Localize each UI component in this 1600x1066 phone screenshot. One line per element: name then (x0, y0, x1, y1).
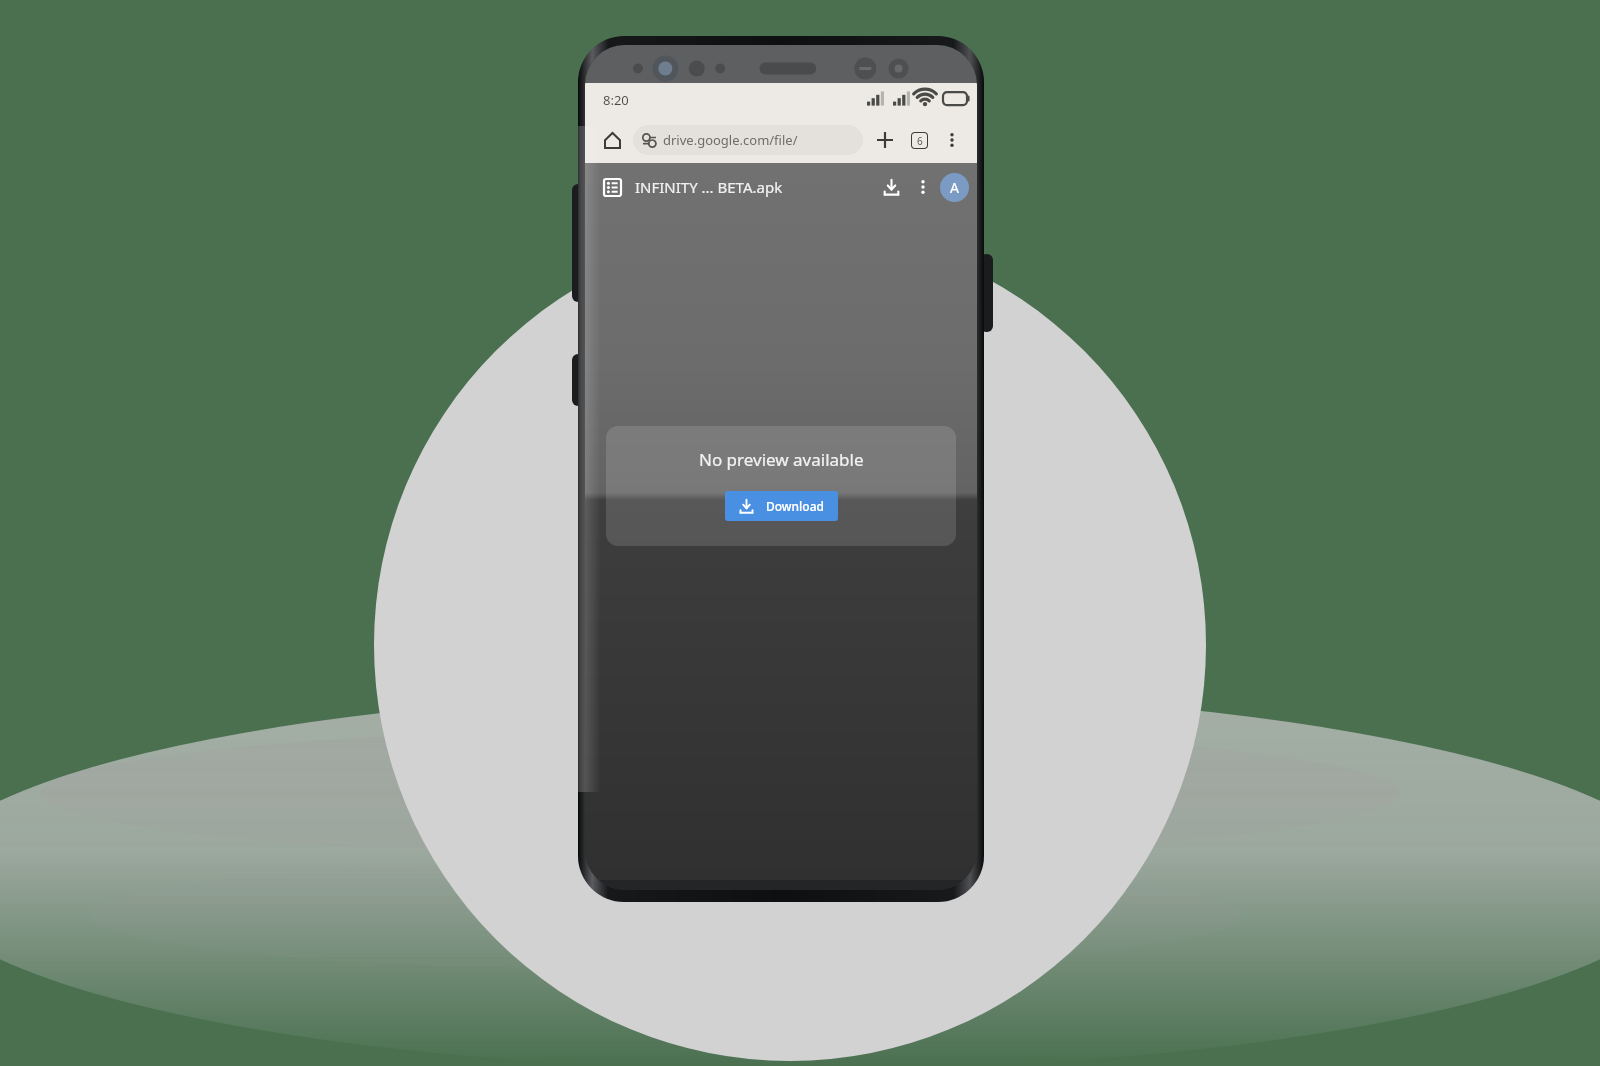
staticText: INFINITY ... BETA.apk (635, 177, 783, 197)
button[interactable]: More options (937, 125, 967, 155)
button[interactable]: drive.google.com/file/ (633, 125, 863, 155)
button[interactable]: File list (595, 170, 629, 204)
button[interactable]: Download (874, 170, 908, 204)
button[interactable]: New tab (869, 124, 901, 156)
staticText: A (950, 178, 959, 197)
staticText: 6 (917, 134, 923, 148)
button[interactable]: More options (908, 172, 938, 202)
button[interactable]: Download (725, 491, 838, 521)
staticText: drive.google.com/file/ (663, 131, 798, 149)
staticText: Download (766, 498, 824, 514)
button[interactable]: Account (940, 173, 969, 202)
staticText: No preview available (699, 448, 864, 471)
staticText: 8:20 (603, 91, 629, 109)
button[interactable]: Tabs (903, 124, 935, 156)
button[interactable]: Home (595, 123, 629, 157)
